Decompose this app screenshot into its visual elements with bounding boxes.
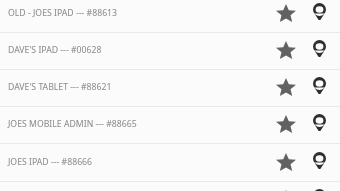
staticText: DAVE'S IPAD --- #00628 [8, 44, 269, 56]
button[interactable]: Locate [303, 33, 336, 69]
button[interactable]: DAVE'S IPAD --- #00628 [0, 33, 340, 70]
button[interactable]: Favourite [269, 145, 303, 181]
staticText: JOES IPAD --- #88666 [8, 156, 269, 168]
button[interactable]: Locate [303, 0, 336, 32]
button[interactable]: Favourite [269, 107, 303, 143]
button[interactable]: Favourite [269, 70, 303, 106]
button[interactable]: Favourite [269, 33, 303, 69]
staticText: OLD - JOES IPAD --- #88613 [8, 7, 269, 19]
button[interactable]: Favourite [269, 0, 303, 32]
button[interactable]: Locate [303, 145, 336, 181]
button[interactable]: OLD - JOES IPAD --- #88613 [0, 0, 340, 33]
button[interactable]: Locate [303, 182, 336, 191]
button[interactable]: DAVE'S TABLET --- #88621 [0, 70, 340, 107]
button[interactable]: Locate [303, 107, 336, 143]
button[interactable]: Locate [303, 70, 336, 106]
staticText: DAVE'S TABLET --- #88621 [8, 81, 269, 93]
button[interactable]: JOES IPAD --- #88666 [0, 145, 340, 182]
button[interactable]: JOES MOBILE ADMIN --- #88665 [0, 107, 340, 144]
staticText: JOES MOBILE ADMIN --- #88665 [8, 118, 269, 130]
button[interactable]: JOES PHONE --- #88667 [0, 182, 340, 191]
